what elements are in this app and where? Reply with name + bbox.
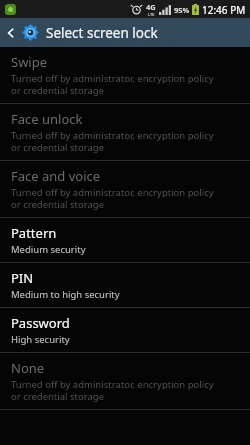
staticText: Medium security [11, 243, 86, 256]
button[interactable]: Password [0, 308, 250, 352]
button[interactable]: Pattern [0, 218, 250, 262]
staticText: Turned off by administrator, encryption … [11, 72, 214, 97]
staticText: Pattern [11, 224, 57, 242]
button[interactable]: Swipe [0, 47, 250, 103]
button[interactable]: Back [0, 18, 22, 47]
button[interactable]: Face unlock [0, 104, 250, 160]
staticText: Swipe [11, 53, 48, 71]
staticText: 12:46 PM [202, 3, 246, 17]
staticText: PIN [11, 269, 34, 287]
staticText: LTE [148, 12, 155, 17]
button[interactable]: Face and voice [0, 161, 250, 217]
staticText: Turned off by administrator, encryption … [11, 186, 214, 211]
staticText: Turned off by administrator, encryption … [11, 378, 214, 403]
button[interactable]: PIN [0, 263, 250, 307]
staticText: 95% [174, 5, 190, 15]
staticText: Face unlock [11, 110, 83, 128]
staticText: High security [11, 333, 70, 346]
staticText: None [11, 359, 45, 377]
button[interactable]: None [0, 353, 250, 409]
staticText: Select screen lock [46, 24, 158, 42]
staticText: Password [11, 314, 70, 332]
staticText: Medium to high security [11, 288, 120, 301]
staticText: 4G [146, 2, 156, 12]
staticText: Turned off by administrator, encryption … [11, 129, 214, 154]
staticText: Face and voice [11, 167, 101, 185]
